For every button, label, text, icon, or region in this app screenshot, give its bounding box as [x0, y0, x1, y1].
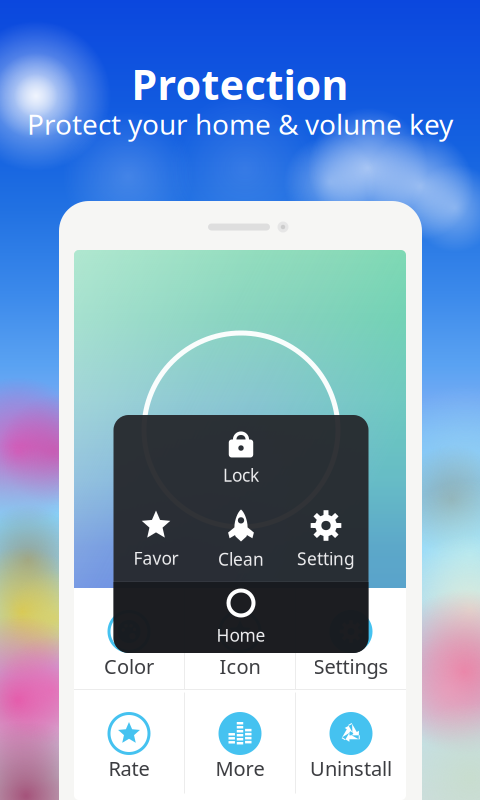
- button[interactable]: Setting: [283, 510, 368, 570]
- staticText: Clean: [218, 547, 264, 570]
- button[interactable]: Color: [74, 588, 184, 689]
- button[interactable]: Icon: [185, 588, 295, 689]
- staticText: Home: [216, 623, 265, 646]
- staticText: Icon: [219, 653, 260, 680]
- staticText: Color: [104, 653, 154, 680]
- button[interactable]: More: [185, 690, 295, 796]
- button[interactable]: Rate: [74, 690, 184, 796]
- staticText: Uninstall: [310, 755, 392, 782]
- button[interactable]: Uninstall: [296, 690, 406, 796]
- staticText: Protect your home & volume key: [27, 105, 453, 143]
- staticText: Rate: [108, 755, 149, 782]
- staticText: Favor: [133, 546, 178, 569]
- staticText: Lock: [223, 463, 259, 486]
- button[interactable]: Lock: [113, 427, 368, 486]
- button[interactable]: Settings: [296, 588, 406, 689]
- staticText: Protection: [131, 57, 348, 111]
- staticText: Setting: [297, 547, 355, 570]
- staticText: More: [215, 755, 264, 782]
- staticText: Settings: [313, 653, 388, 680]
- button[interactable]: Clean: [198, 509, 283, 570]
- button[interactable]: Home: [113, 588, 368, 646]
- button[interactable]: Favor: [113, 510, 198, 569]
